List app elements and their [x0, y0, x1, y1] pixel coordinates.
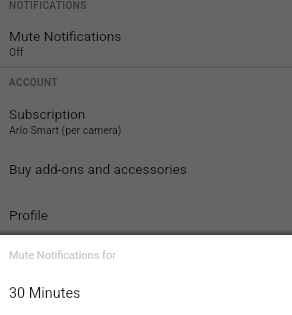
- staticText: Buy add-ons and accessories: [9, 161, 187, 177]
- button[interactable]: 30 Minutes: [0, 280, 292, 314]
- staticText: 30 Minutes: [9, 285, 81, 302]
- staticText: Arlo Smart (per camera): [9, 124, 122, 136]
- staticText: Subscription: [9, 106, 86, 122]
- staticText: Mute Notifications for: [9, 249, 116, 262]
- button[interactable]: Buy add-ons and accessories: [0, 155, 292, 195]
- staticText: ACCOUNT: [9, 77, 58, 89]
- staticText: Off: [9, 46, 24, 58]
- staticText: NOTIFICATIONS: [9, 0, 87, 12]
- button[interactable]: Mute Notifications: [0, 21, 292, 66]
- button[interactable]: Subscription: [0, 100, 292, 146]
- staticText: Mute Notifications: [9, 28, 122, 44]
- staticText: Profile: [9, 207, 49, 223]
- button[interactable]: Profile: [0, 201, 292, 241]
